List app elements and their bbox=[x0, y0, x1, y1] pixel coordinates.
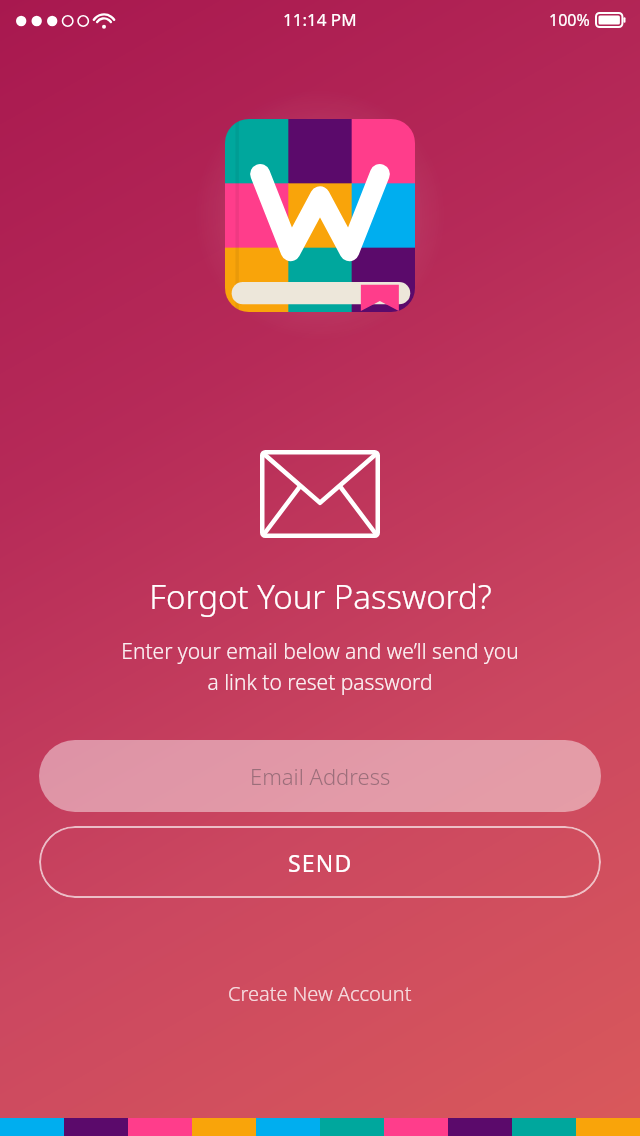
other: Email bbox=[260, 450, 380, 538]
staticText: 11:14 PM bbox=[283, 8, 357, 31]
staticText: Email Address bbox=[250, 761, 391, 791]
button[interactable]: SEND bbox=[39, 826, 601, 898]
staticText: SEND bbox=[288, 847, 353, 878]
staticText: Create New Account bbox=[228, 980, 412, 1007]
staticText: Forgot Your Password? bbox=[149, 574, 492, 619]
button[interactable]: Email Address bbox=[39, 740, 601, 812]
staticText: 100% bbox=[549, 9, 590, 31]
staticText: Enter your email below and we’ll send yo… bbox=[121, 637, 519, 696]
button[interactable]: Create New Account bbox=[214, 972, 426, 1015]
